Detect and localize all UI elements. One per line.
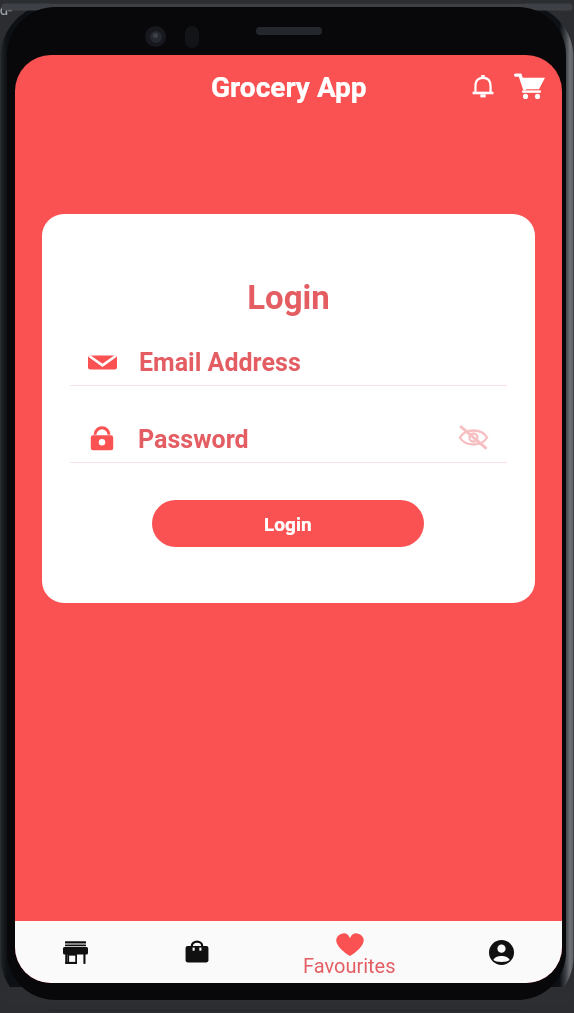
staticText: Email Address — [139, 348, 301, 377]
staticText: Login — [264, 513, 312, 535]
staticText: Grocery App — [211, 71, 367, 104]
button[interactable]: Shop — [15, 921, 136, 983]
button[interactable]: Orders — [136, 921, 258, 983]
staticText: Login — [42, 278, 535, 317]
button[interactable]: Show password — [455, 419, 491, 455]
button[interactable]: Password — [88, 421, 525, 457]
button[interactable]: Favourites — [258, 921, 440, 983]
staticText: Password — [138, 425, 249, 454]
button[interactable]: Profile — [440, 921, 562, 983]
button[interactable]: Shopping cart — [508, 63, 552, 107]
button[interactable]: Email Address — [88, 344, 488, 380]
button[interactable]: Login — [152, 500, 424, 547]
staticText: id- — [0, 1, 13, 19]
staticText: Favourites — [303, 954, 396, 977]
button[interactable]: Notifications — [461, 65, 505, 109]
